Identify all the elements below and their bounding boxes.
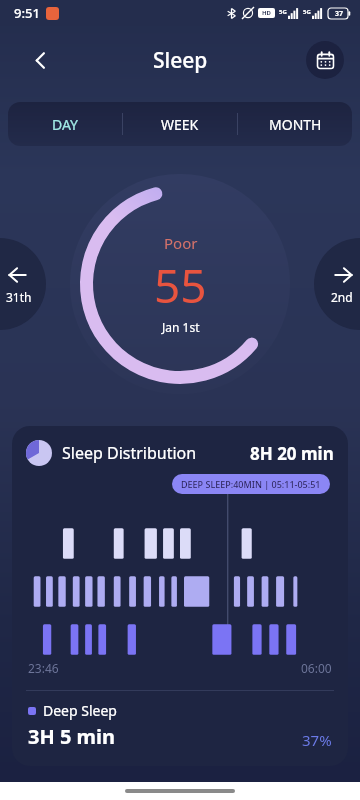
other: Next day — [330, 263, 354, 305]
staticText: HD — [262, 9, 271, 17]
staticText: DEEP SLEEP:40MIN | 05:11-05:51 — [181, 478, 321, 490]
staticText: 23:46 — [28, 660, 59, 676]
staticText: WEEK — [161, 115, 199, 134]
staticText: 3H 5 min — [28, 723, 116, 750]
button[interactable]: Sleep Distribution — [12, 426, 348, 766]
staticText: 55 — [154, 254, 207, 317]
button[interactable]: Back — [22, 42, 58, 78]
staticText: DAY — [52, 115, 78, 134]
button[interactable]: MONTH — [238, 102, 352, 146]
staticText: 2nd — [331, 289, 353, 305]
button[interactable]: Calendar — [306, 41, 344, 79]
staticText: Deep Sleep — [43, 701, 117, 720]
staticText: MONTH — [269, 115, 322, 134]
staticText: 5G — [303, 8, 311, 16]
button[interactable] — [314, 238, 360, 330]
staticText: 06:00 — [301, 660, 332, 676]
staticText: 31th — [6, 289, 32, 305]
other: Previous day — [6, 263, 32, 305]
button[interactable]: DAY — [8, 102, 122, 146]
staticText: Poor — [164, 233, 198, 253]
staticText: Sleep Distribution — [62, 442, 197, 464]
staticText: Jan 1st — [162, 319, 200, 335]
staticText: 37 — [335, 9, 344, 19]
staticText: 8H 20 min — [250, 442, 334, 465]
staticText: 37% — [302, 730, 332, 750]
staticText: 9:51 — [14, 4, 40, 22]
staticText: 5G — [279, 8, 287, 16]
button[interactable]: WEEK — [123, 102, 237, 146]
button[interactable] — [0, 238, 46, 330]
staticText: Sleep — [153, 46, 208, 75]
